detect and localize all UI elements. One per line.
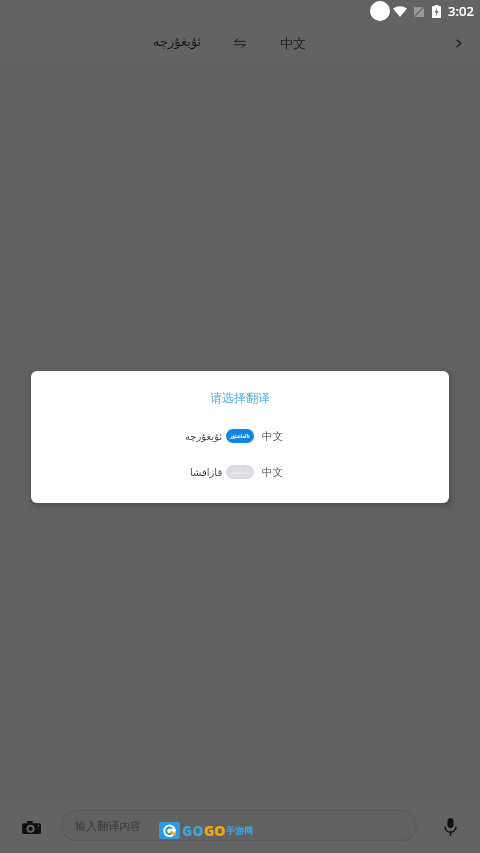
staticText: 请选择翻译 — [210, 390, 270, 405]
staticText: GO — [182, 821, 204, 840]
button[interactable]: Swap languages — [226, 29, 254, 57]
staticText: 中文 — [262, 430, 283, 443]
staticText: 中文 — [280, 35, 306, 51]
staticText: 手游网 — [226, 825, 253, 836]
staticText: ئۇيغۇرچە — [185, 431, 223, 443]
button[interactable]: قازاقشا — [31, 462, 449, 483]
button[interactable]: 输入翻译内容 — [61, 810, 417, 841]
button[interactable]: 中文 — [272, 28, 313, 58]
staticText: 中文 — [262, 466, 283, 479]
staticText: ئالماشتۇر — [230, 433, 250, 439]
staticText: GO — [204, 821, 226, 840]
staticText: قازاقشا — [190, 467, 223, 479]
staticText: 输入翻译内容 — [75, 819, 141, 833]
staticText: ئالماشتۇر — [230, 469, 250, 475]
button[interactable]: ئۇيغۇرچە — [31, 426, 449, 447]
button[interactable]: Camera translate — [17, 813, 45, 841]
staticText: 3:02 — [448, 2, 474, 20]
staticText: ئۇيغۇرچە — [153, 34, 202, 49]
button[interactable]: Voice input — [436, 813, 464, 841]
button[interactable]: ئۇيغۇرچە — [145, 28, 209, 58]
button[interactable]: More languages — [446, 31, 470, 55]
